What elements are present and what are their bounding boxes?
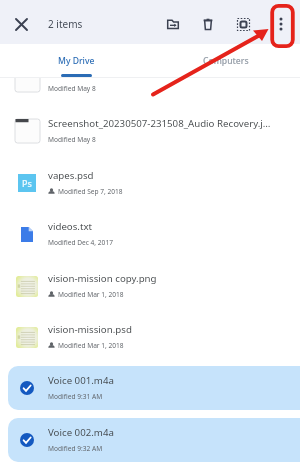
button[interactable]: Select all [230, 11, 256, 37]
button[interactable]: vision-mission copy.png [0, 260, 300, 311]
button[interactable]: Voice 001.m4a [0, 362, 300, 413]
staticText: Modified Mar 1, 2018 [58, 341, 124, 350]
staticText: Screenshot_20230506-101500_Audio.jpg [48, 78, 232, 79]
button[interactable]: Ps [0, 157, 300, 208]
staticText: Voice 001.m4a [48, 374, 114, 387]
staticText: videos.txt [48, 220, 93, 233]
button[interactable]: More options [268, 11, 294, 37]
button[interactable]: Screenshot_20230507-231508_Audio Recover… [0, 105, 300, 156]
staticText: My Drive [58, 55, 95, 67]
staticText: Modified May 8 [48, 84, 96, 93]
button[interactable]: videos.txt [0, 208, 300, 259]
staticText: vapes.psd [48, 169, 94, 182]
button[interactable]: Screenshot_20230506-101500_Audio.jpg [0, 78, 300, 105]
staticText: Modified 9:32 AM [48, 444, 103, 453]
staticText: Computers [203, 55, 249, 67]
staticText: vision-mission copy.png [48, 272, 157, 285]
staticText: Modified Mar 1, 2018 [58, 290, 124, 299]
staticText: Modified 9:31 AM [48, 392, 103, 401]
button[interactable]: Computers [152, 44, 300, 78]
button[interactable]: My Drive [0, 44, 152, 78]
staticText: 2 items [48, 17, 83, 31]
staticText: Ps [22, 177, 32, 189]
staticText: Modified Dec 4, 2017 [48, 238, 113, 247]
button[interactable]: Move to folder [160, 11, 186, 37]
staticText: vision-mission.psd [48, 323, 132, 336]
button[interactable]: Close selection [8, 11, 34, 37]
staticText: Voice 002.m4a [48, 426, 114, 439]
staticText: Screenshot_20230507-231508_Audio Recover… [48, 117, 271, 130]
button[interactable]: vision-mission.psd [0, 311, 300, 362]
button[interactable]: Voice 002.m4a [0, 414, 300, 465]
staticText: Modified May 8 [48, 135, 96, 144]
staticText: Modified Sep 7, 2018 [58, 187, 123, 196]
button[interactable]: Delete [195, 11, 221, 37]
